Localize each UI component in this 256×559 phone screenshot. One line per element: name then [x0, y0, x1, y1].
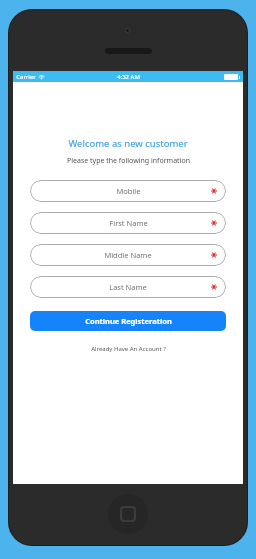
staticText: Mobile	[116, 186, 141, 196]
button[interactable]: First Name	[30, 212, 226, 234]
staticText: Carrier	[16, 73, 36, 81]
button[interactable]: Mobile	[30, 180, 226, 202]
staticText: Continue Registeration	[85, 316, 172, 326]
button[interactable]: Middle Name	[30, 244, 226, 266]
staticText: Last Name	[109, 282, 147, 292]
button[interactable]: Continue Registeration	[30, 311, 226, 331]
button[interactable]: Last Name	[30, 276, 226, 298]
staticText: Welcome as new customer	[68, 137, 188, 150]
staticText: Middle Name	[104, 250, 152, 260]
staticText: Already Have An Account ?	[91, 345, 166, 353]
button[interactable]: Home	[108, 494, 148, 534]
staticText: 4:32 AM	[117, 73, 140, 81]
staticText: First Name	[109, 218, 148, 228]
staticText: Please type the following information	[67, 156, 190, 166]
button[interactable]: Already Have An Account ?	[87, 343, 170, 355]
